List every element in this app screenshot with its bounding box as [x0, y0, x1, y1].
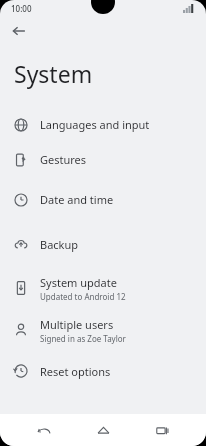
staticText: System	[14, 58, 93, 89]
button[interactable]: Reset options	[0, 351, 206, 391]
button[interactable]: Back	[7, 19, 31, 43]
staticText: Reset options	[40, 364, 111, 379]
button[interactable]: Recent apps	[147, 415, 177, 445]
staticText: Gestures	[40, 152, 87, 167]
button[interactable]: Backup	[0, 222, 206, 267]
staticText: Multiple users	[40, 317, 114, 332]
staticText: 10:00	[11, 3, 32, 14]
staticText: Languages and input	[40, 117, 150, 132]
staticText: System update	[40, 275, 117, 290]
staticText: Updated to Android 12	[40, 291, 126, 302]
button[interactable]: Languages and input	[0, 107, 206, 142]
button[interactable]: System update	[0, 267, 206, 309]
button[interactable]: Multiple users	[0, 309, 206, 351]
button[interactable]: Home	[88, 415, 118, 445]
button[interactable]: Gestures	[0, 142, 206, 177]
staticText: Signed in as Zoe Taylor	[40, 333, 126, 344]
button[interactable]: Date and time	[0, 177, 206, 222]
staticText: Date and time	[40, 192, 114, 207]
staticText: Backup	[40, 237, 79, 252]
button[interactable]: Back	[29, 415, 59, 445]
